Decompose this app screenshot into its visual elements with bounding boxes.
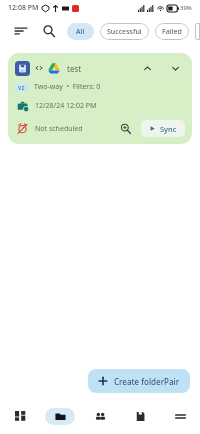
staticText: 12:08 PM	[8, 3, 39, 13]
button[interactable]	[195, 23, 200, 40]
button[interactable]: Folder pairs	[40, 402, 80, 430]
staticText: Failed	[162, 27, 182, 37]
button[interactable]: Logs	[120, 402, 160, 430]
button[interactable]: Dashboard	[0, 402, 40, 430]
staticText: All	[76, 27, 85, 37]
staticText: Sync	[160, 124, 177, 134]
button[interactable]: Failed	[155, 23, 189, 40]
button[interactable]: Sync	[141, 120, 185, 137]
staticText: 39%	[180, 4, 192, 12]
button[interactable]: Sort	[10, 20, 32, 42]
staticText: test	[67, 63, 82, 74]
staticText: Not scheduled	[35, 124, 83, 134]
button[interactable]: Accounts	[80, 402, 120, 430]
button[interactable]: Move down	[167, 60, 183, 76]
staticText: V2	[18, 84, 25, 91]
button[interactable]: Move up	[139, 60, 155, 76]
staticText: Create folderPair	[114, 376, 180, 387]
button[interactable]: Create folderPair	[88, 369, 190, 393]
button[interactable]: Menu	[160, 402, 200, 430]
button[interactable]: All	[67, 23, 94, 40]
staticText: Successful	[107, 27, 142, 37]
staticText: 12/28/24 12:02 PM	[35, 101, 97, 111]
staticText: Two-way • Filters: 0	[34, 82, 101, 92]
button[interactable]: test	[8, 53, 192, 144]
button[interactable]: Successful	[100, 23, 149, 40]
button[interactable]: Analyze	[117, 120, 134, 137]
button[interactable]: Search	[38, 20, 60, 42]
